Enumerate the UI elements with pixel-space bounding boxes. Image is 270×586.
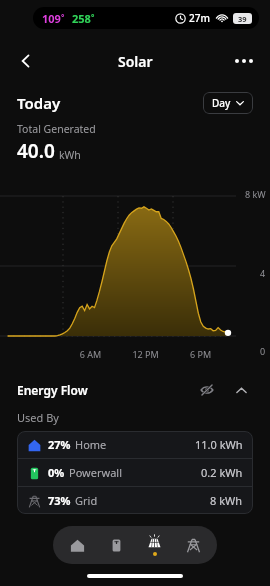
staticText: Solar <box>118 52 153 71</box>
button[interactable]: Solar <box>135 526 173 564</box>
staticText: 27% <box>48 437 71 452</box>
staticText: 4 <box>260 267 266 279</box>
staticText: Grid <box>75 493 98 508</box>
staticText: Today <box>17 93 61 113</box>
staticText: 109 <box>42 11 61 26</box>
staticText: 73% <box>48 493 71 508</box>
button[interactable]: Back <box>10 45 42 77</box>
staticText: Used By <box>17 410 59 425</box>
staticText: 27m <box>189 11 210 25</box>
button[interactable]: Powerwall <box>97 526 135 564</box>
staticText: 8 kWh <box>210 493 243 508</box>
staticText: Home <box>75 437 107 452</box>
staticText: 12 PM <box>118 348 173 360</box>
staticText: ° <box>61 11 65 22</box>
staticText: ° <box>91 11 95 22</box>
staticText: 0.2 kWh <box>201 465 243 480</box>
staticText: Day <box>212 96 231 110</box>
staticText: Energy Flow <box>17 382 88 398</box>
staticText: 0 <box>260 345 266 357</box>
staticText: Powerwall <box>69 465 122 480</box>
button[interactable]: Grid <box>174 526 212 564</box>
button[interactable]: More options <box>228 45 260 77</box>
button[interactable]: Day <box>203 92 253 114</box>
button[interactable]: Collapse <box>229 378 253 402</box>
staticText: Total Generated <box>17 122 96 136</box>
staticText: kWh <box>59 148 81 162</box>
staticText: 39 <box>238 14 247 24</box>
staticText: 11.0 kWh <box>195 437 243 452</box>
staticText: 8 kW <box>245 188 266 200</box>
button[interactable]: 73% <box>17 487 253 514</box>
staticText: 6 PM <box>173 348 228 360</box>
button[interactable]: Home <box>58 526 96 564</box>
button[interactable]: Hide values <box>195 378 219 402</box>
staticText: 258 <box>72 11 91 26</box>
button[interactable]: 27% <box>17 431 253 458</box>
staticText: 6 AM <box>63 348 118 360</box>
staticText: 0% <box>48 465 65 480</box>
staticText: 40.0 <box>17 138 55 164</box>
button[interactable]: 0% <box>17 459 253 486</box>
